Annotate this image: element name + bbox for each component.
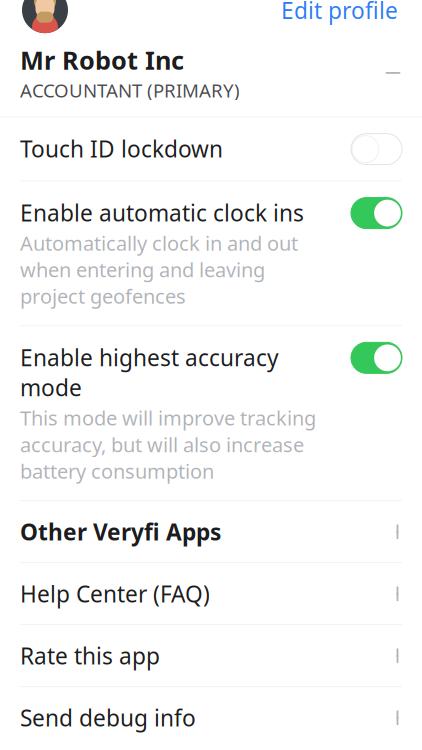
button[interactable]: Enable highest accuracy mode — [0, 326, 422, 500]
staticText: Edit profile — [281, 0, 398, 25]
staticText: Rate this app — [20, 641, 160, 671]
button[interactable]: Touch ID lockdown — [0, 118, 422, 181]
staticText: Other Veryfi Apps — [20, 517, 221, 547]
staticText: This mode will improve tracking accuracy… — [20, 405, 316, 484]
staticText: ACCOUNTANT (PRIMARY) — [20, 78, 240, 103]
staticText: Automatically clock in and out when ente… — [20, 230, 298, 309]
button[interactable]: Send debug info — [0, 687, 422, 748]
button[interactable]: Mr Robot Inc — [0, 35, 422, 117]
staticText: Help Center (FAQ) — [20, 579, 210, 609]
staticText: Send debug info — [20, 703, 196, 733]
button[interactable]: Other Veryfi Apps — [0, 501, 422, 562]
button[interactable]: Rate this app — [0, 625, 422, 686]
staticText: Enable automatic clock ins — [20, 198, 304, 228]
button[interactable]: Edit profile — [277, 0, 402, 31]
button[interactable]: Help Center (FAQ) — [0, 563, 422, 624]
button[interactable]: Enable automatic clock ins — [0, 182, 422, 325]
staticText: Mr Robot Inc — [20, 43, 184, 77]
staticText: Enable highest accuracy mode — [20, 342, 279, 403]
staticText: Touch ID lockdown — [20, 134, 223, 164]
